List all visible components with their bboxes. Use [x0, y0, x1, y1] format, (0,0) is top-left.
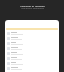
button[interactable] [7, 61, 57, 66]
staticText: Welcome to Network [20, 4, 45, 7]
button[interactable] [7, 36, 57, 41]
button[interactable] [7, 51, 57, 56]
button[interactable] [7, 41, 57, 46]
button[interactable] [7, 56, 57, 61]
staticText: See what's happening [21, 7, 44, 10]
button[interactable] [7, 31, 57, 36]
button[interactable] [7, 66, 57, 71]
button[interactable] [7, 46, 57, 51]
